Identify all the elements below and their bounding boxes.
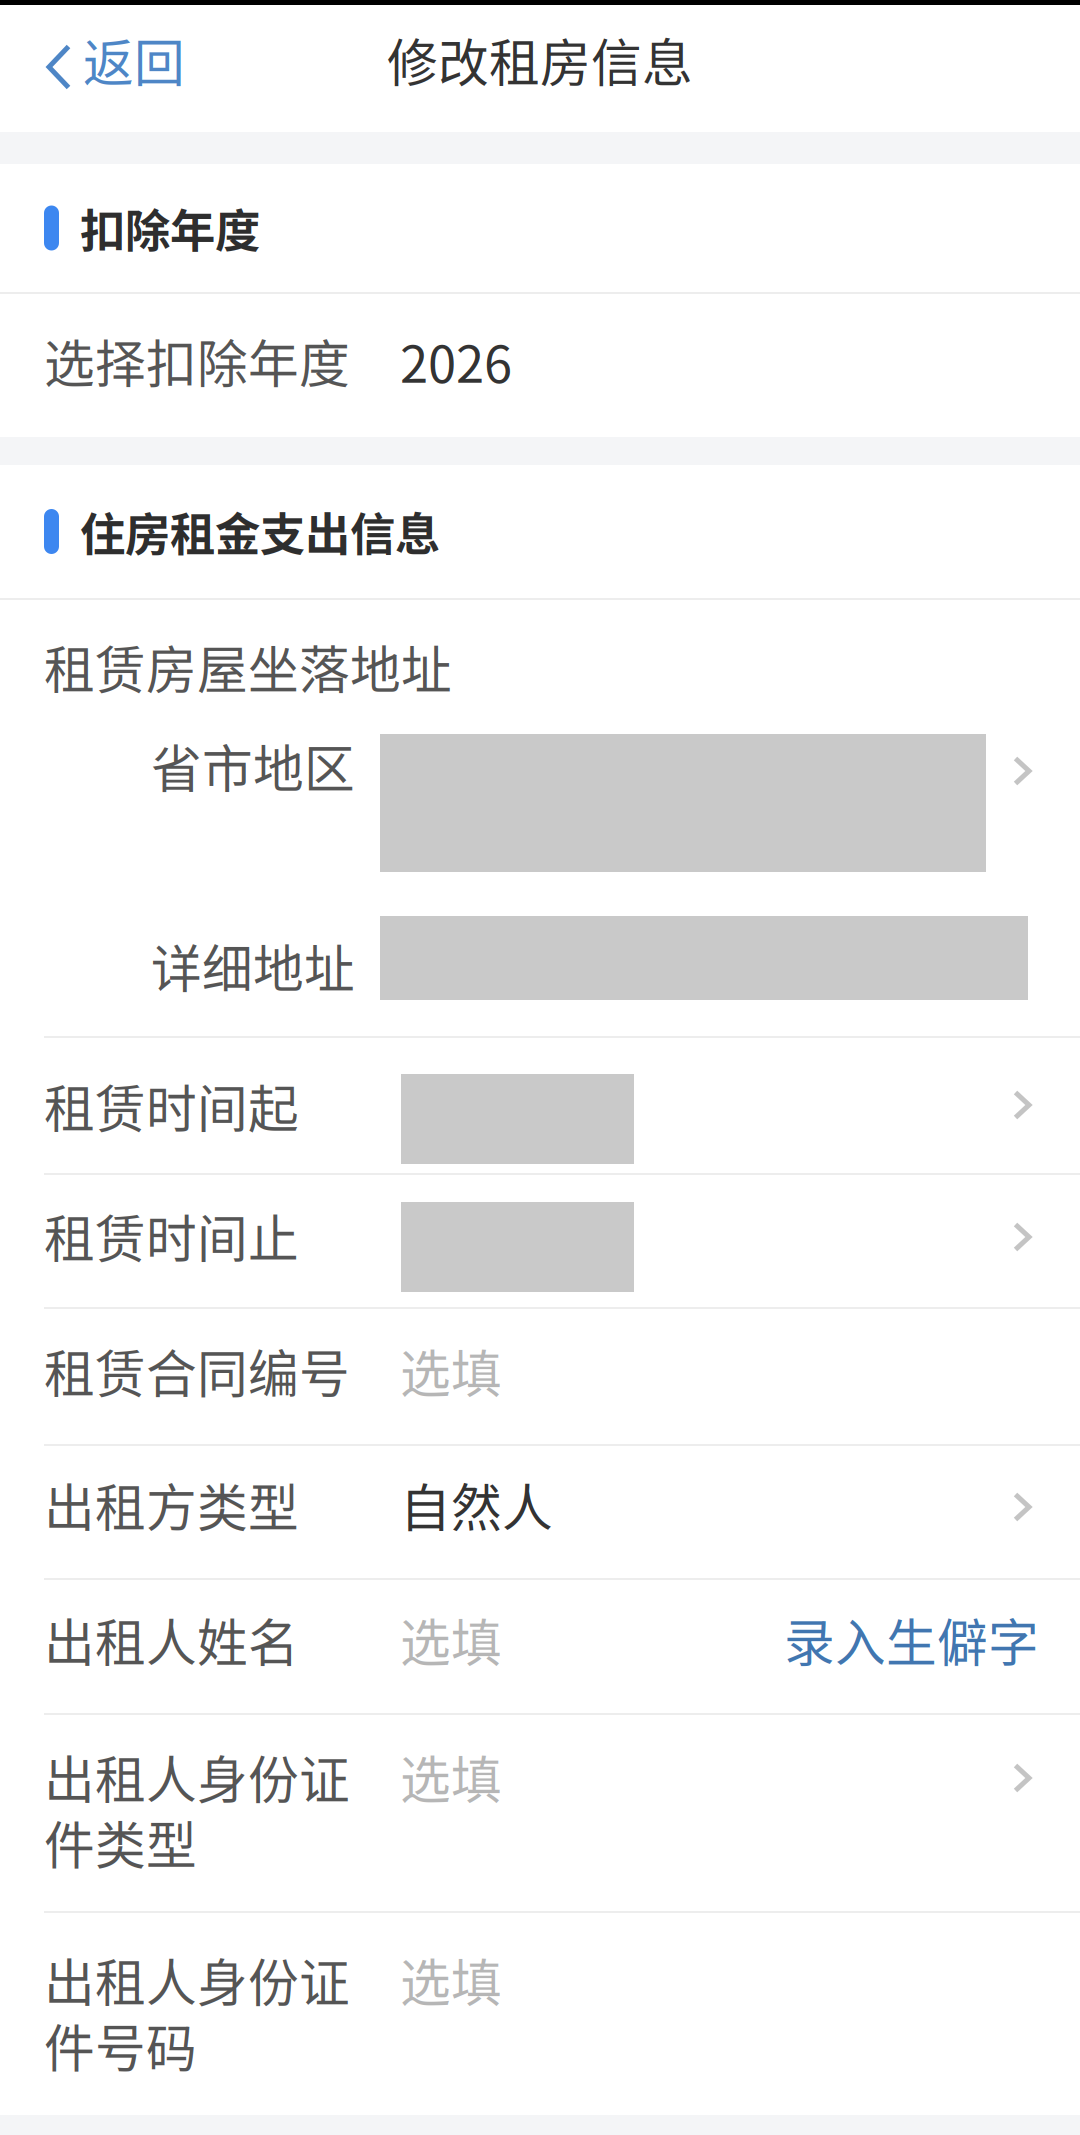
staticText: 返回 xyxy=(83,23,185,96)
staticText: 修改租房信息 xyxy=(387,23,693,96)
button[interactable]: 详细地址 xyxy=(0,896,1080,1036)
staticText: 出租方类型 xyxy=(44,1468,299,1541)
button[interactable]: 出租人身份证 件号码 xyxy=(0,1913,1080,2115)
button[interactable]: 租赁合同编号 xyxy=(0,1309,1080,1444)
staticText: 扣除年度 xyxy=(80,195,260,261)
staticText: 租赁房屋坐落地址 xyxy=(44,630,452,703)
staticText: 选择扣除年度 xyxy=(44,324,350,397)
button[interactable]: 出租方类型 xyxy=(0,1446,1080,1578)
staticText: 租赁时间止 xyxy=(44,1199,299,1272)
staticText: 2026 xyxy=(400,324,512,397)
staticText: 选填 xyxy=(400,1943,502,2016)
staticText: 租赁合同编号 xyxy=(44,1334,350,1407)
button[interactable]: 租赁时间止 xyxy=(0,1175,1080,1307)
staticText: 详细地址 xyxy=(151,929,355,1002)
staticText: 出租人身份证 件号码 xyxy=(44,1943,350,2082)
staticText: 住房租金支出信息 xyxy=(80,499,440,564)
button[interactable]: 省市地区 xyxy=(0,712,1080,896)
button[interactable]: 租赁时间起 xyxy=(0,1038,1080,1173)
staticText: 选填 xyxy=(400,1603,502,1676)
button[interactable]: 返回 xyxy=(0,5,211,132)
staticText: 出租人姓名 xyxy=(44,1603,299,1676)
button[interactable]: 录入生僻字 xyxy=(754,1580,1080,1713)
button[interactable]: 出租人身份证 件类型 xyxy=(0,1715,1080,1911)
staticText: 自然人 xyxy=(400,1468,553,1541)
staticText: 选填 xyxy=(400,1334,502,1407)
staticText: 出租人身份证 件类型 xyxy=(44,1740,350,1879)
staticText: 选填 xyxy=(400,1740,502,1813)
button[interactable]: 选择扣除年度 xyxy=(0,294,1080,437)
staticText: 省市地区 xyxy=(151,729,355,802)
staticText: 录入生僻字 xyxy=(784,1603,1039,1676)
staticText: 租赁时间起 xyxy=(44,1069,299,1142)
